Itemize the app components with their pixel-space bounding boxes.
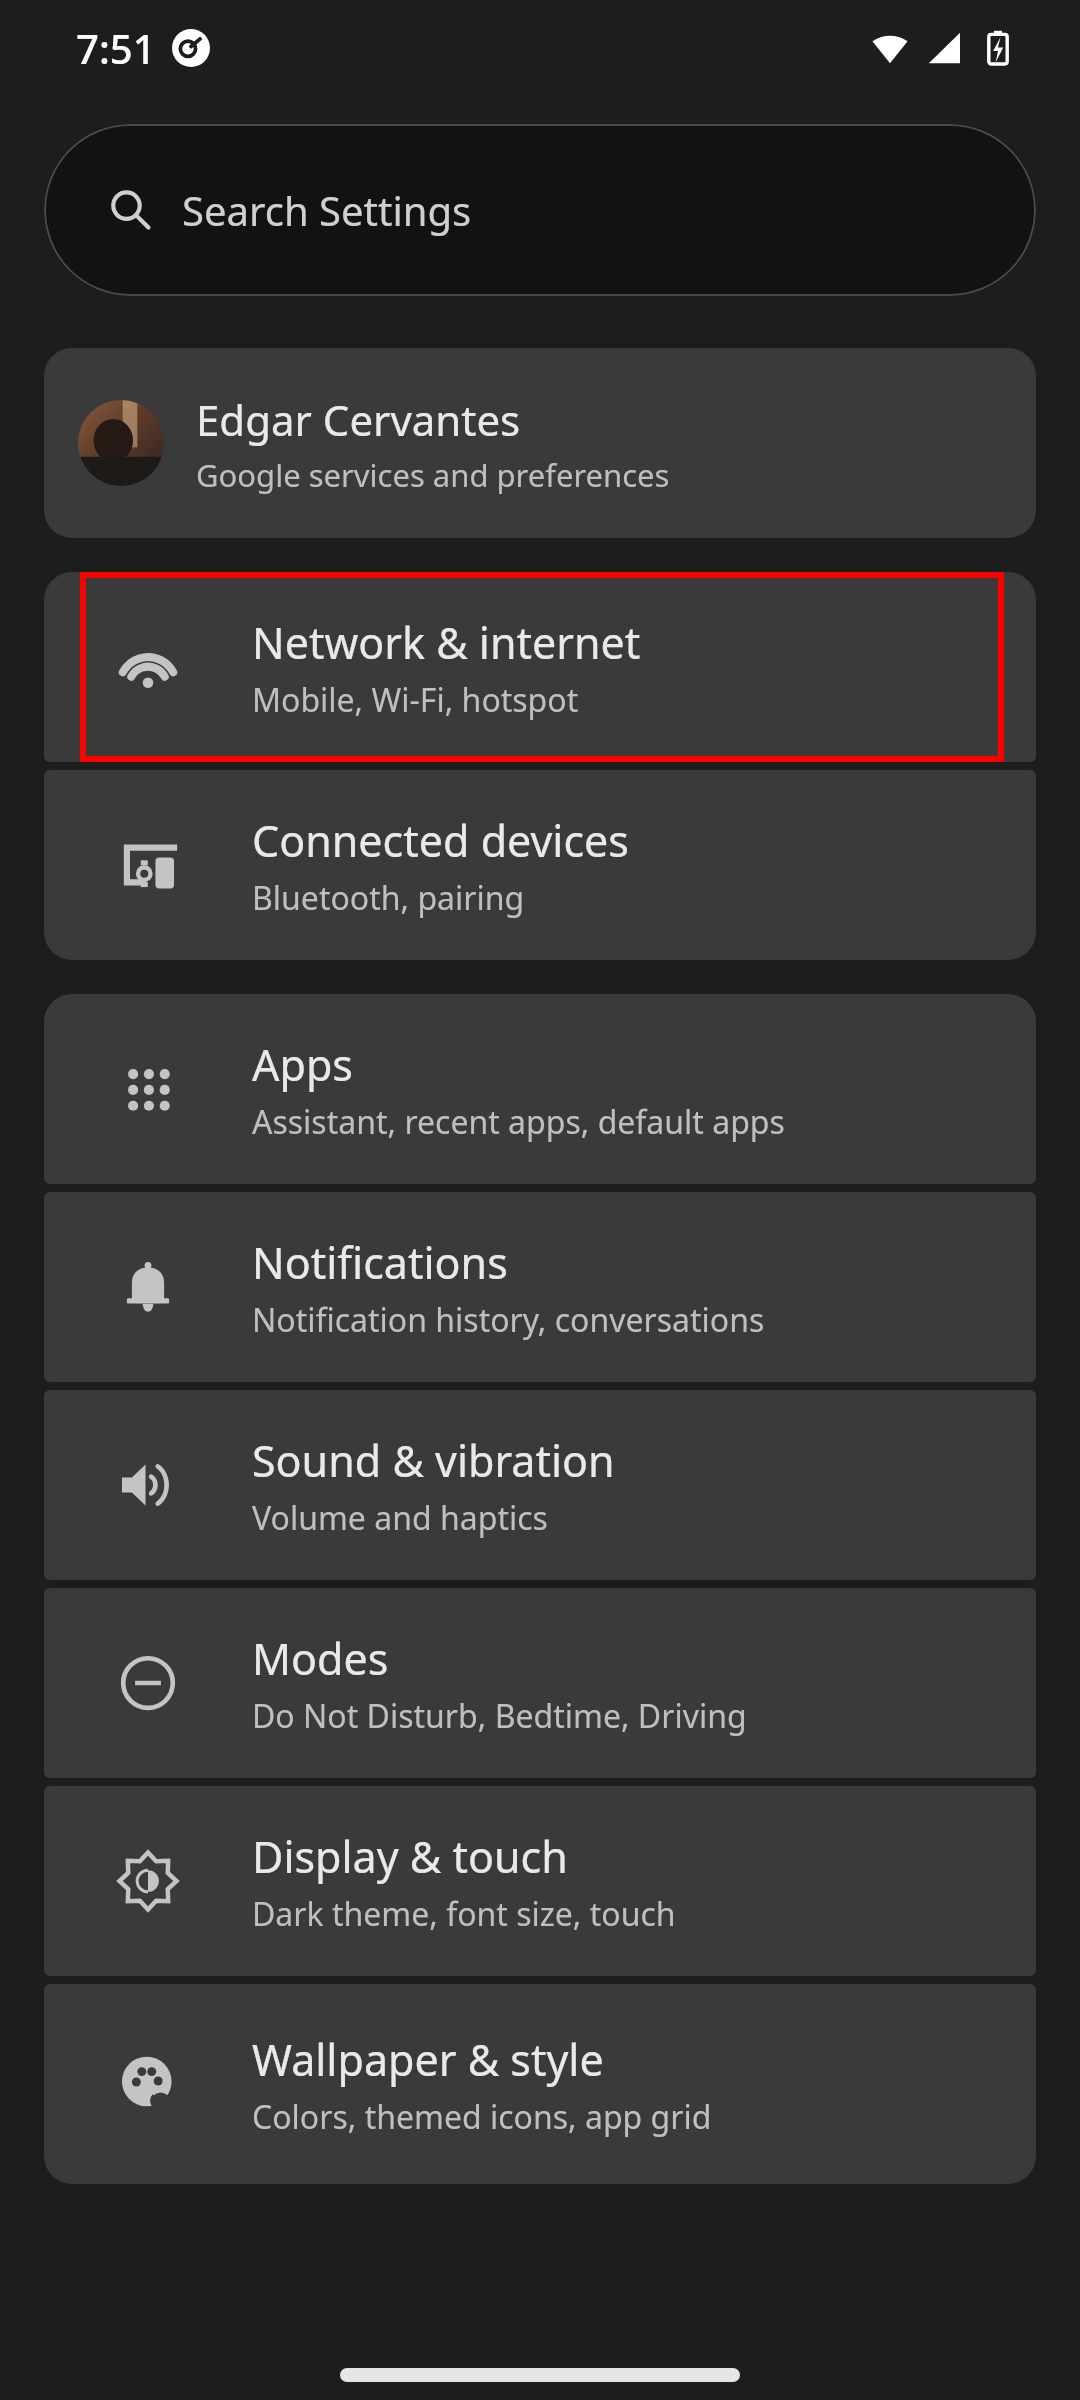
staticText: Modes <box>252 1629 389 1688</box>
staticText: Sound & vibration <box>252 1431 615 1490</box>
staticText: Wallpaper & style <box>252 2030 604 2089</box>
button[interactable]: Connected devices <box>44 770 1036 960</box>
button[interactable]: Wallpaper & style <box>44 1984 1036 2184</box>
staticText: Do Not Disturb, Bedtime, Driving <box>252 1694 747 1738</box>
button[interactable]: Network & internet <box>44 572 1036 762</box>
staticText: Apps <box>252 1035 353 1094</box>
button[interactable]: Search Settings <box>44 124 1036 296</box>
staticText: Assistant, recent apps, default apps <box>252 1100 785 1144</box>
staticText: Colors, themed icons, app grid <box>252 2095 712 2139</box>
staticText: Network & internet <box>252 613 641 672</box>
staticText: Display & touch <box>252 1827 568 1886</box>
staticText: 7:51 <box>76 21 156 75</box>
button[interactable]: Notifications <box>44 1192 1036 1382</box>
button[interactable]: Edgar Cervantes <box>44 348 1036 538</box>
button[interactable]: Apps <box>44 994 1036 1184</box>
staticText: Search Settings <box>182 183 472 237</box>
staticText: Dark theme, font size, touch <box>252 1892 676 1936</box>
staticText: Connected devices <box>252 811 629 870</box>
staticText: Notification history, conversations <box>252 1298 765 1342</box>
button[interactable]: Display & touch <box>44 1786 1036 1976</box>
staticText: Google services and preferences <box>196 454 670 496</box>
staticText: Notifications <box>252 1233 508 1292</box>
staticText: Bluetooth, pairing <box>252 876 525 920</box>
staticText: Mobile, Wi-Fi, hotspot <box>252 678 579 722</box>
button[interactable]: Sound & vibration <box>44 1390 1036 1580</box>
button[interactable]: Modes <box>44 1588 1036 1778</box>
staticText: Edgar Cervantes <box>196 391 521 448</box>
staticText: Volume and haptics <box>252 1496 548 1540</box>
